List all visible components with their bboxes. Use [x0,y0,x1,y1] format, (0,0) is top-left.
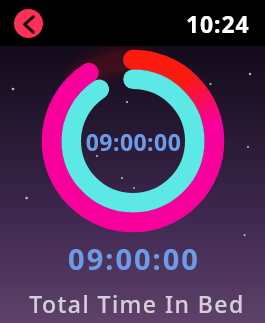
staticText: 09:00:00 [1,126,265,157]
staticText: Total Time In Bed [29,288,245,319]
button[interactable]: Back [14,9,43,38]
staticText: 10:24 [186,8,250,39]
staticText: 09:00:00 [68,239,200,278]
